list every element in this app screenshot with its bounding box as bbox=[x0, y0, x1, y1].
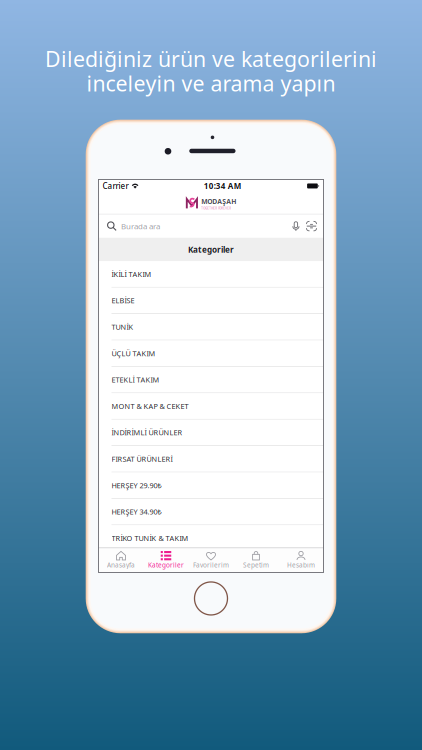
staticText: FIRSAT ÜRÜNLERİ bbox=[111, 454, 172, 464]
staticText: Burada ara bbox=[121, 221, 160, 231]
button[interactable]: HERŞEY 29.90₺ bbox=[98, 472, 323, 499]
staticText: ELBİSE bbox=[111, 296, 134, 305]
staticText: 10:34 AM bbox=[204, 181, 242, 191]
button[interactable]: Kategoriler bbox=[143, 548, 188, 572]
button[interactable]: FIRSAT ÜRÜNLERİ bbox=[98, 446, 323, 472]
button[interactable]: TUNİK bbox=[98, 314, 323, 340]
button[interactable]: TRİKO TUNİK & TAKIM bbox=[98, 525, 323, 552]
button[interactable]: Favorilerim bbox=[188, 548, 233, 572]
button[interactable]: MONT & KAP & CEKET bbox=[98, 393, 323, 420]
button[interactable]: Anasayfa bbox=[98, 548, 143, 572]
button[interactable]: Hesabım bbox=[278, 548, 323, 572]
button[interactable]: ETEKLİ TAKIM bbox=[98, 367, 323, 393]
staticText: Kategoriler bbox=[148, 561, 184, 569]
staticText: İNDİRİMLİ ÜRÜNLER bbox=[111, 428, 182, 437]
staticText: Dilediğiniz ürün ve kategorilerini bbox=[45, 44, 377, 73]
staticText: Sepetim bbox=[243, 561, 269, 569]
staticText: MODAŞAH bbox=[201, 197, 236, 206]
staticText: Anasayfa bbox=[107, 561, 135, 569]
button[interactable]: İKİLİ TAKIM bbox=[98, 261, 323, 288]
staticText: HERŞEY 34.90₺ bbox=[111, 507, 161, 516]
staticText: Kategoriler bbox=[188, 244, 234, 255]
staticText: Hesabım bbox=[287, 561, 315, 569]
staticText: Favorilerim bbox=[193, 561, 229, 569]
staticText: HERŞEY 29.90₺ bbox=[111, 480, 161, 490]
button[interactable]: ÜÇLÜ TAKIM bbox=[98, 340, 323, 367]
staticText: MONT & KAP & CEKET bbox=[111, 401, 188, 411]
button[interactable]: HERŞEY 34.90₺ bbox=[98, 499, 323, 525]
button[interactable]: ELBİSE bbox=[98, 288, 323, 314]
staticText: TRİKO TUNİK & TAKIM bbox=[111, 533, 188, 543]
staticText: inceleyin ve arama yapın bbox=[86, 69, 335, 97]
staticText: TUNİK bbox=[111, 322, 133, 332]
staticText: Carrier bbox=[102, 181, 128, 191]
button[interactable]: İNDİRİMLİ ÜRÜNLER bbox=[98, 420, 323, 446]
staticText: ÜÇLÜ TAKIM bbox=[111, 348, 155, 358]
button[interactable]: Sepetim bbox=[233, 548, 278, 572]
staticText: ETEKLİ TAKIM bbox=[111, 375, 159, 384]
staticText: İKİLİ TAKIM bbox=[111, 269, 151, 279]
staticText: TOGETHER FOREVER bbox=[201, 206, 231, 210]
